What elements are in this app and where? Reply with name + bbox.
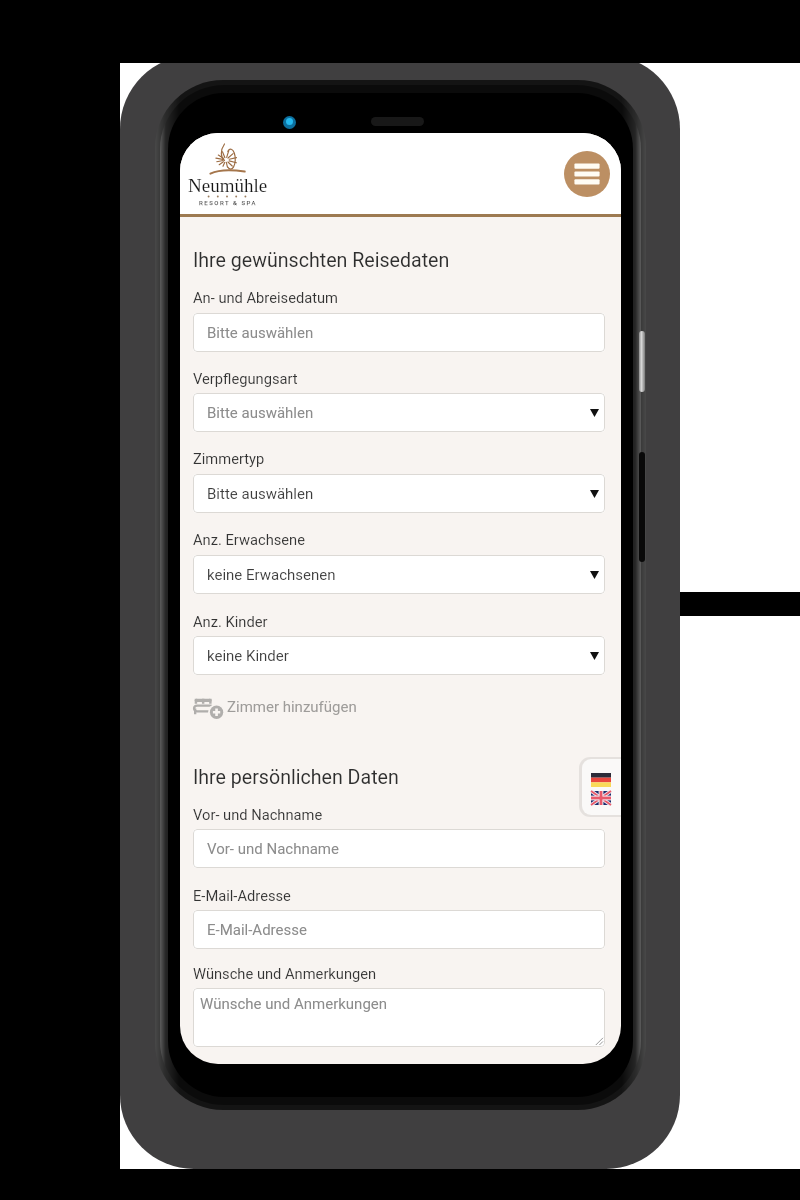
button[interactable]: Wünsche und Anmerkungen [193, 988, 605, 1047]
staticText: Bitte auswählen [207, 324, 314, 342]
button[interactable]: Sprache wählen [582, 759, 621, 815]
staticText: Anz. Kinder [193, 613, 268, 630]
button[interactable]: Menu [564, 151, 610, 197]
button[interactable]: E-Mail-Adresse [193, 910, 605, 949]
staticText: Wünsche und Anmerkungen [200, 995, 388, 1013]
staticText: Vor- und Nachname [193, 806, 323, 823]
staticText: Ihre gewünschten Reisedaten [193, 249, 450, 272]
button[interactable]: Bitte auswählen [193, 474, 605, 513]
staticText: Neumühle [188, 175, 268, 196]
button[interactable]: Zimmer hinzufügen [193, 695, 357, 719]
staticText: Ihre persönlichen Daten [193, 766, 399, 789]
staticText: Wünsche und Anmerkungen [193, 965, 377, 982]
staticText: Zimmertyp [193, 450, 265, 467]
staticText: keine Erwachsenen [207, 566, 336, 584]
staticText: Bitte auswählen [207, 404, 314, 422]
staticText: An- und Abreisedatum [193, 289, 338, 306]
button[interactable]: Bitte auswählen [193, 313, 605, 352]
button[interactable]: Vor- und Nachname [193, 829, 605, 868]
staticText: E-Mail-Adresse [193, 887, 291, 904]
staticText: RESORT & SPA [199, 199, 257, 206]
button[interactable]: keine Kinder [193, 636, 605, 675]
staticText: keine Kinder [207, 647, 289, 665]
staticText: Verpflegungsart [193, 370, 298, 387]
button[interactable]: keine Erwachsenen [193, 555, 605, 594]
staticText: Vor- und Nachname [207, 840, 339, 858]
staticText: E-Mail-Adresse [207, 921, 307, 939]
staticText: Anz. Erwachsene [193, 531, 306, 548]
button[interactable]: Bitte auswählen [193, 393, 605, 432]
staticText: Bitte auswählen [207, 485, 314, 503]
staticText: Zimmer hinzufügen [227, 698, 357, 716]
